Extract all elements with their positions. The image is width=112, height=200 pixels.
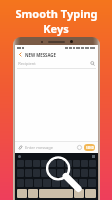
button[interactable] [57,169,64,177]
button[interactable] [52,179,60,187]
button[interactable] [41,160,48,167]
button[interactable] [28,189,38,198]
button[interactable] [41,169,48,177]
button[interactable] [85,189,96,198]
other: Search contacts [90,61,95,66]
other: Back [18,52,23,57]
button[interactable]: Attach file [18,145,23,150]
button[interactable]: SEND [84,144,95,151]
button[interactable] [70,179,78,187]
button[interactable] [49,169,56,177]
staticText: NEW MESSAGE [25,52,56,58]
button[interactable] [65,169,72,177]
button[interactable] [39,189,73,198]
staticText: Recipient [18,61,36,66]
button[interactable]: Settings [18,155,21,158]
staticText: Enter message [25,145,53,150]
staticText: Keys [43,21,69,36]
button[interactable] [74,189,84,198]
button[interactable] [61,179,69,187]
button[interactable]: Back [15,50,98,59]
button[interactable] [17,189,27,198]
button[interactable]: Recipient [15,59,98,68]
staticText: SEND [86,146,94,150]
button[interactable] [57,160,64,167]
button[interactable]: Emoji [77,145,82,150]
button[interactable] [79,179,87,187]
button[interactable] [65,160,72,167]
button[interactable] [49,160,56,167]
staticText: Smooth Typing [15,6,98,21]
